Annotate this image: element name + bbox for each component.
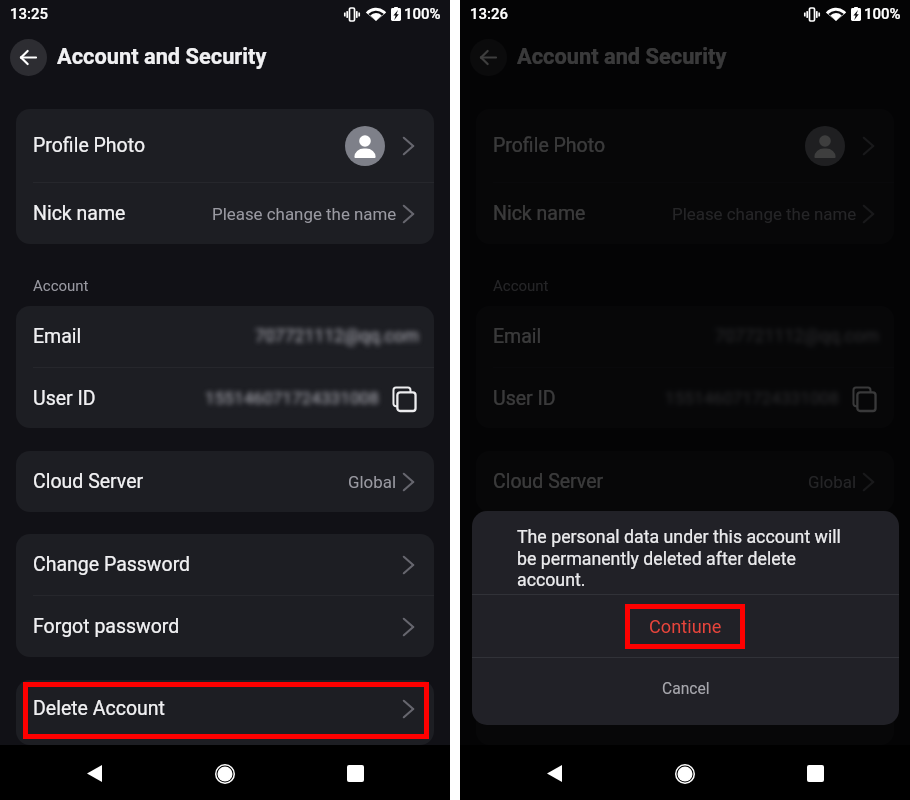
button[interactable]: Back <box>54 746 134 800</box>
button[interactable]: Back <box>10 39 47 76</box>
button[interactable]: Cancel <box>472 658 899 725</box>
button[interactable]: Delete Account <box>16 680 434 737</box>
button[interactable]: Home <box>645 746 725 800</box>
button[interactable]: Email <box>476 306 894 367</box>
staticText: Nick name <box>493 202 586 225</box>
staticText: 155146071724331008 <box>205 388 379 408</box>
button[interactable]: Back <box>470 39 507 76</box>
staticText: Account <box>493 277 549 295</box>
staticText: The personal data under this account wil… <box>517 527 849 590</box>
staticText: Account and Security <box>517 44 727 70</box>
staticText: Please change the name <box>212 204 397 224</box>
button[interactable]: Cloud Server <box>16 451 434 512</box>
button[interactable]: Recent apps <box>775 746 855 800</box>
staticText: 13:26 <box>470 5 509 23</box>
staticText: Delete Account <box>33 697 165 720</box>
staticText: Email <box>33 325 82 348</box>
staticText: User ID <box>493 387 556 410</box>
staticText: 155146071724331008 <box>665 388 839 408</box>
staticText: Please change the name <box>672 204 857 224</box>
staticText: Change Password <box>493 553 651 576</box>
staticText: Contiune <box>649 616 722 637</box>
button[interactable]: Nick name <box>16 183 434 244</box>
staticText: 100% <box>864 5 901 23</box>
button[interactable]: Profile Photo <box>16 109 434 182</box>
staticText: Change Password <box>33 553 191 576</box>
staticText: Cloud Server <box>33 470 144 493</box>
button[interactable]: Change Password <box>476 534 894 595</box>
staticText: Account and Security <box>57 44 267 70</box>
staticText: 707721112@qq.com <box>715 326 880 347</box>
staticText: User ID <box>33 387 96 410</box>
button[interactable]: Recent apps <box>315 746 395 800</box>
staticText: Profile Photo <box>493 134 606 157</box>
button[interactable]: Delete Account <box>476 680 894 737</box>
button[interactable]: Forgot password <box>16 596 434 657</box>
button[interactable]: Contiune <box>472 595 899 657</box>
staticText: Forgot password <box>493 615 640 638</box>
button[interactable]: Cloud Server <box>476 451 894 512</box>
staticText: Forgot password <box>33 615 180 638</box>
button[interactable]: Profile Photo <box>476 109 894 182</box>
staticText: 707721112@qq.com <box>255 326 420 347</box>
staticText: 100% <box>404 5 441 23</box>
staticText: Global <box>348 472 397 492</box>
staticText: Cloud Server <box>493 470 604 493</box>
button[interactable]: Nick name <box>476 183 894 244</box>
staticText: 13:25 <box>10 5 49 23</box>
staticText: Nick name <box>33 202 126 225</box>
button[interactable]: Back <box>514 746 594 800</box>
staticText: Account <box>33 277 89 295</box>
button[interactable]: Change Password <box>16 534 434 595</box>
staticText: Email <box>493 325 542 348</box>
staticText: Global <box>808 472 857 492</box>
staticText: Cancel <box>662 680 710 698</box>
staticText: Profile Photo <box>33 134 146 157</box>
button[interactable]: Forgot password <box>476 596 894 657</box>
button[interactable]: Email <box>16 306 434 367</box>
button[interactable]: User ID <box>476 368 894 428</box>
button[interactable]: Home <box>185 746 265 800</box>
button[interactable]: User ID <box>16 368 434 428</box>
